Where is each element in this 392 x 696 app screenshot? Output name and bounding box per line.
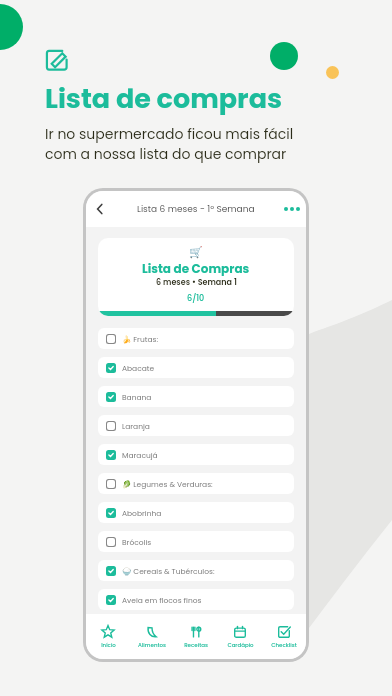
button[interactable]: Maracujá [98, 444, 294, 465]
button[interactable]: Aveia em flocos finos [98, 589, 294, 610]
staticText: 🍚 Cereais & Tubérculos: [122, 566, 215, 576]
button[interactable]: Alimentos [130, 614, 174, 659]
staticText: 6/10 [187, 293, 205, 304]
button[interactable]: Voltar [90, 199, 110, 219]
staticText: Brócolis [122, 537, 152, 547]
staticText: Banana [122, 392, 152, 402]
button[interactable]: Receitas [174, 614, 218, 659]
button[interactable]: Mais opções [284, 207, 300, 211]
button[interactable]: Cardápio [218, 614, 262, 659]
button[interactable]: 🍌 Frutas: [98, 328, 294, 349]
staticText: 🛒 [189, 246, 203, 259]
button[interactable]: Banana [98, 386, 294, 407]
button[interactable]: 🥬 Legumes & Verduras: [98, 473, 294, 494]
button[interactable]: Brócolis [98, 531, 294, 552]
staticText: Lista 6 meses - 1º Semana [137, 203, 255, 216]
staticText: Ir no supermercado ficou mais fácil com … [45, 124, 294, 164]
staticText: 6 meses • Semana 1 [156, 277, 237, 288]
staticText: Aveia em flocos finos [122, 595, 202, 605]
button[interactable]: 🍚 Cereais & Tubérculos: [98, 560, 294, 581]
staticText: Lista de compras [45, 80, 283, 118]
staticText: Maracujá [122, 450, 158, 460]
button[interactable]: Checklist [262, 614, 306, 659]
staticText: Abacate [122, 363, 155, 373]
button[interactable]: Laranja [98, 415, 294, 436]
button[interactable]: Início [86, 614, 130, 659]
staticText: Lista de Compras [142, 260, 250, 277]
staticText: Início [101, 641, 116, 649]
button[interactable]: Abacate [98, 357, 294, 378]
staticText: Cardápio [227, 641, 254, 649]
staticText: Receitas [184, 641, 208, 649]
staticText: Laranja [122, 421, 150, 431]
button[interactable]: 🛒 [98, 238, 294, 316]
staticText: Abobrinha [122, 508, 162, 518]
staticText: 🥬 Legumes & Verduras: [122, 479, 213, 489]
staticText: Checklist [271, 641, 297, 649]
staticText: 🍌 Frutas: [122, 334, 159, 344]
button[interactable]: Abobrinha [98, 502, 294, 523]
staticText: Alimentos [138, 641, 166, 649]
